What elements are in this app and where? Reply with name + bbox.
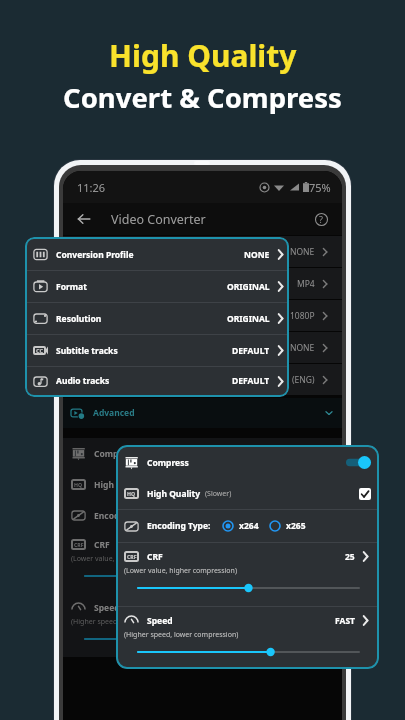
staticText: (Lower value, higher compression) — [124, 566, 238, 576]
staticText: 75% — [309, 180, 331, 195]
button[interactable]: CRF — [124, 549, 371, 564]
staticText: Subtitle tracks — [94, 342, 151, 354]
staticText: HQ — [74, 481, 83, 488]
staticText: (Slower) — [205, 489, 232, 499]
button[interactable]: Compress — [124, 447, 371, 478]
staticText: MP4 — [297, 278, 315, 290]
button[interactable]: Speed — [71, 600, 334, 615]
staticText: High Quality — [94, 479, 148, 491]
staticText: CRF — [94, 539, 110, 551]
staticText: High Quality — [109, 35, 297, 76]
staticText: (ENG) — [292, 374, 315, 386]
button[interactable]: Format — [33, 271, 286, 302]
button[interactable]: Subtitle tracks — [71, 332, 330, 363]
staticText: NONE — [290, 342, 315, 354]
button[interactable]: Resolution — [33, 303, 286, 334]
staticText: High Quality — [147, 488, 201, 500]
staticText: ? — [319, 213, 323, 225]
staticText: Subtitle tracks — [56, 345, 118, 357]
staticText: Resolution — [94, 310, 137, 322]
button[interactable]: Advanced — [71, 398, 334, 428]
button[interactable]: Compress — [71, 438, 334, 469]
staticText: Encoding Type: — [94, 510, 158, 522]
staticText: Compress — [147, 457, 189, 469]
staticText: Speed — [94, 602, 120, 614]
staticText: Advanced — [93, 407, 135, 419]
staticText: 11:26 — [77, 180, 106, 195]
staticText: Conversion Profile — [56, 249, 134, 261]
button[interactable]: x265 — [269, 520, 306, 532]
staticText: NONE — [244, 249, 270, 261]
button[interactable]: Audio tracks — [71, 364, 330, 395]
button[interactable]: Audio tracks — [33, 367, 286, 395]
staticText: NONE — [290, 246, 315, 258]
staticText: Conversion Profile — [94, 246, 167, 258]
staticText: (Higher speed, lower compression) — [124, 630, 239, 640]
staticText: ORIGINAL — [227, 313, 270, 325]
button[interactable]: x264 — [222, 520, 259, 532]
button[interactable]: Conversion Profile — [71, 236, 330, 267]
staticText: Audio tracks — [94, 374, 144, 386]
button[interactable]: Conversion Profile — [33, 239, 286, 270]
staticText: Speed — [147, 615, 173, 627]
button[interactable]: Format — [71, 268, 330, 299]
staticText: CRF — [127, 553, 137, 560]
button[interactable]: Help — [310, 208, 332, 230]
staticText: FAST — [335, 615, 355, 627]
button[interactable]: Encoding Type: — [71, 500, 334, 531]
staticText: CRF — [74, 541, 84, 548]
staticText: CRF — [147, 551, 163, 563]
button[interactable]: HQ — [71, 469, 334, 500]
button[interactable]: HQ — [124, 478, 371, 509]
staticText: Format — [56, 281, 87, 293]
staticText: Resolution — [56, 313, 102, 325]
staticText: (Higher speed, lower compression) — [71, 617, 186, 627]
staticText: CC — [36, 347, 44, 355]
staticText: Convert & Compress — [63, 79, 342, 116]
staticText: Video Converter — [111, 211, 206, 228]
staticText: DEFAULT — [232, 375, 270, 387]
staticText: x264 — [239, 520, 259, 532]
button[interactable]: Resolution — [71, 300, 330, 331]
staticText: 1080P — [290, 310, 315, 322]
staticText: Compress — [94, 448, 136, 460]
staticText: (Lower value, higher compression) — [71, 554, 185, 564]
staticText: 25 — [345, 551, 355, 563]
staticText: ORIGINAL — [227, 281, 270, 293]
button[interactable]: CRF — [71, 537, 334, 552]
staticText: DEFAULT — [232, 345, 270, 357]
staticText: HQ — [127, 490, 136, 497]
staticText: x265 — [286, 520, 306, 532]
staticText: Encoding Type: — [147, 520, 211, 532]
staticText: Audio tracks — [56, 375, 110, 387]
button[interactable]: Back — [73, 208, 95, 230]
button[interactable]: Speed — [124, 613, 371, 628]
button[interactable]: CC — [33, 335, 286, 366]
